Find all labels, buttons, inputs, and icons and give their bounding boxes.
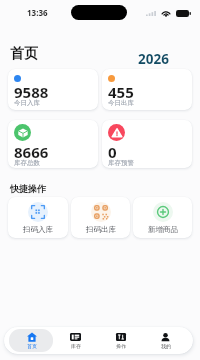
button[interactable]: 库存 — [53, 329, 98, 352]
staticText: 我的 — [161, 343, 171, 349]
button[interactable]: 扫码入库 — [8, 197, 68, 238]
button[interactable]: 0 — [102, 120, 192, 168]
staticText: 首页 — [27, 343, 37, 349]
staticText: 2026 — [138, 50, 169, 68]
staticText: 455 — [108, 82, 134, 102]
button[interactable]: 455 — [102, 69, 192, 110]
staticText: 扫码出库 — [86, 225, 116, 234]
button[interactable]: 扫码出库 — [71, 197, 130, 238]
staticText: 快捷操作 — [10, 183, 46, 194]
staticText: 首页 — [10, 45, 38, 63]
staticText: 今日入库 — [14, 99, 40, 107]
staticText: 今日出库 — [108, 99, 134, 107]
button[interactable]: 新增商品 — [133, 197, 192, 238]
button[interactable]: 8666 — [8, 120, 98, 168]
staticText: 13:36 — [27, 7, 48, 18]
button[interactable]: 我的 — [143, 329, 188, 352]
button[interactable]: 9588 — [8, 69, 98, 110]
staticText: 扫码入库 — [23, 225, 53, 234]
staticText: 库存预警 — [108, 159, 134, 167]
staticText: 操作 — [116, 343, 126, 349]
staticText: 库存总数 — [14, 159, 40, 167]
staticText: 0 — [108, 142, 117, 162]
button[interactable]: 首页 — [9, 329, 53, 352]
staticText: 新增商品 — [148, 225, 178, 234]
staticText: 8666 — [14, 142, 49, 162]
button[interactable]: 操作 — [98, 329, 143, 352]
staticText: 9588 — [14, 82, 49, 102]
staticText: 库存 — [71, 343, 81, 349]
